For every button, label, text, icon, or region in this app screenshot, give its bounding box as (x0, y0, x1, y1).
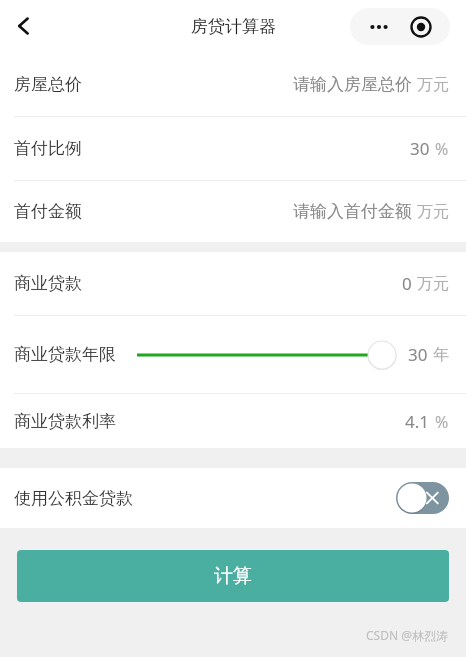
staticText: 30 (408, 343, 428, 366)
staticText: 计算 (214, 564, 252, 588)
button[interactable]: 首付比例 (0, 117, 466, 180)
staticText: 首付金额 (14, 201, 82, 222)
staticText: 30 (410, 137, 430, 160)
button[interactable]: 商业贷款 (0, 252, 466, 315)
staticText: 商业贷款利率 (14, 411, 116, 432)
button[interactable]: Back (4, 5, 46, 47)
staticText: CSDN @林烈涛 (366, 627, 448, 643)
staticText: 年 (433, 345, 449, 365)
staticText: 使用公积金贷款 (14, 488, 133, 509)
staticText: 请输入首付金额 (293, 201, 412, 222)
staticText: 首付比例 (14, 138, 82, 159)
button[interactable]: 首付金额 (0, 181, 466, 242)
staticText: 商业贷款 (14, 273, 82, 294)
button[interactable]: 商业贷款年限 (0, 316, 466, 393)
button[interactable]: 使用公积金贷款 (0, 468, 466, 528)
button[interactable]: Menu and close (350, 8, 450, 45)
staticText: % (435, 138, 449, 160)
staticText: 万元 (417, 274, 449, 294)
staticText: 0 (402, 272, 412, 295)
staticText: 房屋总价 (14, 74, 82, 95)
staticText: % (435, 411, 449, 433)
button[interactable]: Use housing fund loan toggle, off (396, 482, 449, 514)
button[interactable]: 房屋总价 (0, 52, 466, 116)
staticText: 商业贷款年限 (14, 344, 116, 365)
staticText: 万元 (417, 202, 449, 222)
staticText: 房贷计算器 (191, 16, 276, 37)
button[interactable]: 计算 (17, 550, 449, 602)
staticText: 万元 (417, 75, 449, 95)
staticText: 4.1 (405, 410, 430, 433)
button[interactable]: 商业贷款利率 (0, 394, 466, 448)
staticText: 请输入房屋总价 (293, 74, 412, 95)
